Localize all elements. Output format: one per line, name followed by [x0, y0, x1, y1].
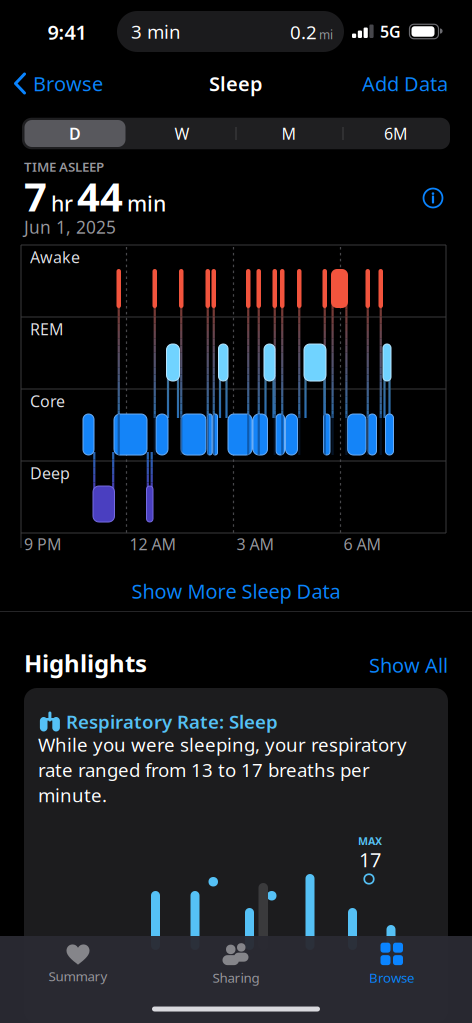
staticText: 17 — [359, 846, 381, 873]
staticText: W — [174, 123, 189, 144]
staticText: 5G — [380, 21, 401, 42]
staticText: Show All — [369, 652, 448, 678]
staticText: Highlights — [24, 647, 147, 679]
staticText: 6 AM — [343, 533, 381, 555]
staticText: Awake — [30, 246, 80, 268]
staticText: Browse — [369, 969, 415, 986]
button[interactable]: M — [238, 118, 339, 149]
staticText: Jun 1, 2025 — [24, 215, 116, 238]
staticText: 7 — [24, 169, 47, 222]
staticText: Sharing — [212, 969, 259, 986]
button[interactable]: Respiratory Rate: Sleep — [24, 688, 448, 1023]
staticText: Deep — [30, 462, 70, 484]
staticText: min — [127, 189, 166, 217]
button[interactable]: Back — [14, 61, 154, 105]
button[interactable]: About Time Asleep — [418, 183, 448, 213]
staticText: 12 AM — [129, 533, 176, 555]
staticText: hr — [51, 189, 73, 217]
button[interactable]: Show More Sleep Data — [0, 571, 472, 611]
staticText: 44 — [77, 169, 123, 222]
staticText: REM — [30, 318, 64, 340]
staticText: M — [281, 123, 296, 144]
staticText: 3 min — [131, 19, 181, 44]
button[interactable]: W — [131, 118, 232, 149]
staticText: 3 AM — [236, 533, 274, 555]
button[interactable]: Browse — [317, 933, 467, 995]
staticText: TIME ASLEEP — [24, 158, 104, 175]
button[interactable]: 6M — [345, 118, 446, 149]
staticText: MAX — [358, 834, 382, 848]
staticText: Sleep — [209, 70, 263, 97]
staticText: Core — [30, 390, 65, 412]
staticText: 6M — [384, 123, 408, 144]
button[interactable]: Sharing — [161, 933, 311, 995]
staticText: Summary — [48, 967, 107, 985]
staticText: Browse — [33, 70, 103, 97]
staticText: 0.2 — [290, 20, 317, 44]
staticText: Respiratory Rate: Sleep — [66, 709, 278, 734]
staticText: While you were sleeping, your respirator… — [38, 732, 407, 807]
staticText: Add Data — [362, 70, 448, 97]
button[interactable]: Add Data — [298, 61, 448, 105]
staticText: D — [69, 123, 81, 144]
staticText: mi — [319, 27, 333, 42]
staticText: Show More Sleep Data — [131, 578, 340, 604]
button[interactable]: D — [24, 118, 125, 149]
staticText: 9 PM — [24, 533, 62, 555]
button[interactable]: Summary — [3, 933, 153, 995]
staticText: 9:41 — [47, 19, 86, 45]
button[interactable]: Show All — [328, 647, 448, 683]
